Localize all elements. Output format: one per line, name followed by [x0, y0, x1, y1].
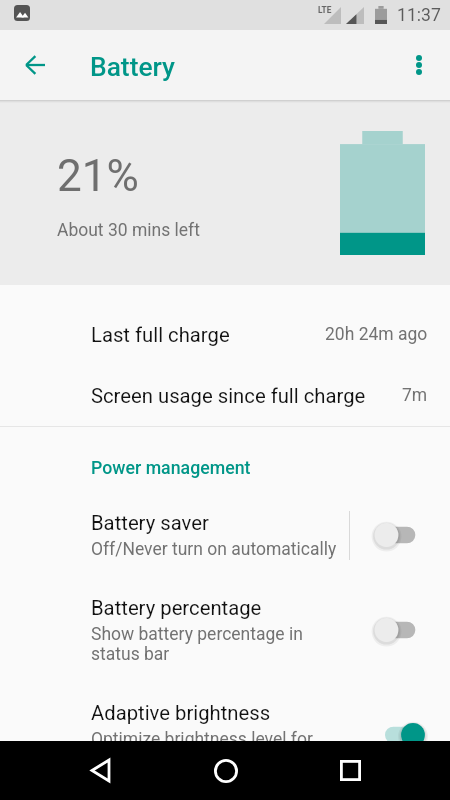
- staticText: Battery percentage: [91, 596, 262, 620]
- staticText: Battery saver: [91, 511, 209, 535]
- staticText: Show battery percentage in status bar: [91, 624, 342, 664]
- button[interactable]: More options: [394, 40, 444, 90]
- button[interactable]: Recent apps: [328, 748, 373, 793]
- staticText: 21%: [57, 150, 139, 202]
- staticText: About 30 mins left: [57, 220, 200, 241]
- button[interactable]: Home: [203, 748, 248, 793]
- button[interactable]: Battery saver: [0, 493, 450, 577]
- button[interactable]: Adaptive brightness: [0, 682, 450, 787]
- staticText: 20h 24m ago: [325, 324, 428, 345]
- staticText: 11:37: [397, 5, 441, 26]
- button[interactable]: Last full charge: [0, 304, 450, 365]
- button[interactable]: Adaptive brightness, on: [367, 711, 450, 759]
- staticText: 7m: [402, 385, 428, 406]
- button[interactable]: Battery percentage: [0, 577, 450, 682]
- staticText: Battery: [90, 52, 176, 83]
- button[interactable]: Navigate up: [10, 40, 60, 90]
- staticText: Adaptive brightness: [91, 701, 271, 725]
- staticText: Off/Never turn on automatically: [91, 539, 337, 560]
- button[interactable]: Screen usage since full charge: [0, 365, 450, 426]
- staticText: LTE: [318, 5, 332, 15]
- staticText: Optimize brightness level for your: [91, 729, 342, 769]
- button[interactable]: Battery percentage, off: [367, 606, 450, 654]
- staticText: Screen usage since full charge: [91, 384, 366, 408]
- staticText: Power management: [91, 458, 251, 479]
- staticText: Last full charge: [91, 323, 230, 347]
- button[interactable]: Back: [78, 748, 123, 793]
- button[interactable]: Battery saver, off: [367, 511, 450, 559]
